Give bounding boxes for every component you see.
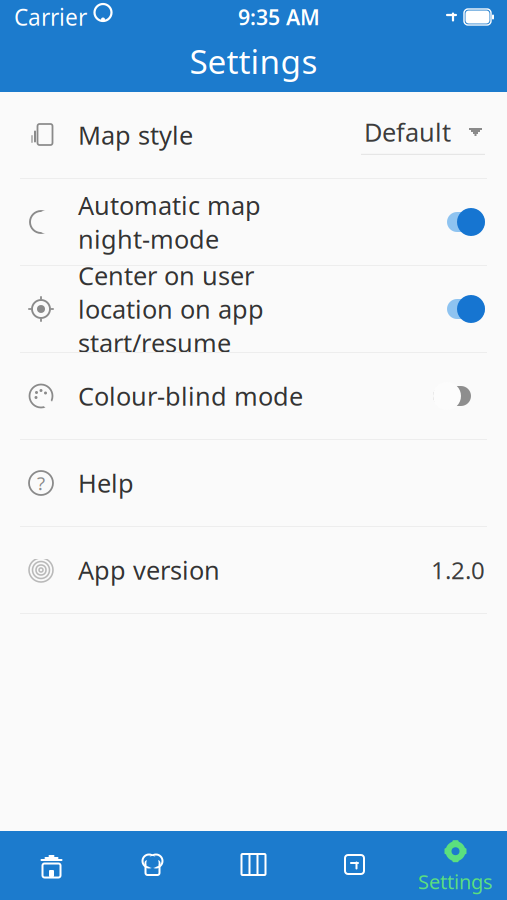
button[interactable]: Navigation xyxy=(304,831,405,900)
staticText: Automatic map night-mode xyxy=(78,188,261,256)
button[interactable]: Map xyxy=(203,831,304,900)
button[interactable]: Colour-blind mode xyxy=(0,353,507,440)
button[interactable]: ? xyxy=(0,440,507,527)
button[interactable]: Home xyxy=(1,831,102,900)
button[interactable]: Favorites xyxy=(102,831,203,900)
staticText: Map style xyxy=(78,118,193,152)
button[interactable]: Settings xyxy=(405,831,506,900)
button[interactable]: Map style xyxy=(0,92,507,179)
button[interactable]: App version xyxy=(0,527,507,614)
staticText: ? xyxy=(37,471,45,495)
staticText: App version xyxy=(78,553,220,587)
button[interactable]: Center on user location on app start/res… xyxy=(0,266,507,353)
staticText: Settings xyxy=(418,868,493,895)
button[interactable]: Map style: Default xyxy=(361,109,485,161)
staticText: Carrier xyxy=(14,2,87,32)
button[interactable]: Toggle on xyxy=(433,202,485,242)
button[interactable]: Toggle on xyxy=(433,289,485,329)
staticText: Help xyxy=(78,466,134,500)
staticText: Settings xyxy=(189,39,317,83)
staticText: Center on user location on app start/res… xyxy=(78,258,264,359)
staticText: Default xyxy=(364,115,451,149)
button[interactable]: Toggle off xyxy=(433,376,485,416)
staticText: Colour-blind mode xyxy=(78,379,303,413)
button[interactable]: Automatic map night-mode xyxy=(0,179,507,266)
staticText: 9:35 AM xyxy=(238,3,320,31)
staticText: 1.2.0 xyxy=(431,554,485,586)
